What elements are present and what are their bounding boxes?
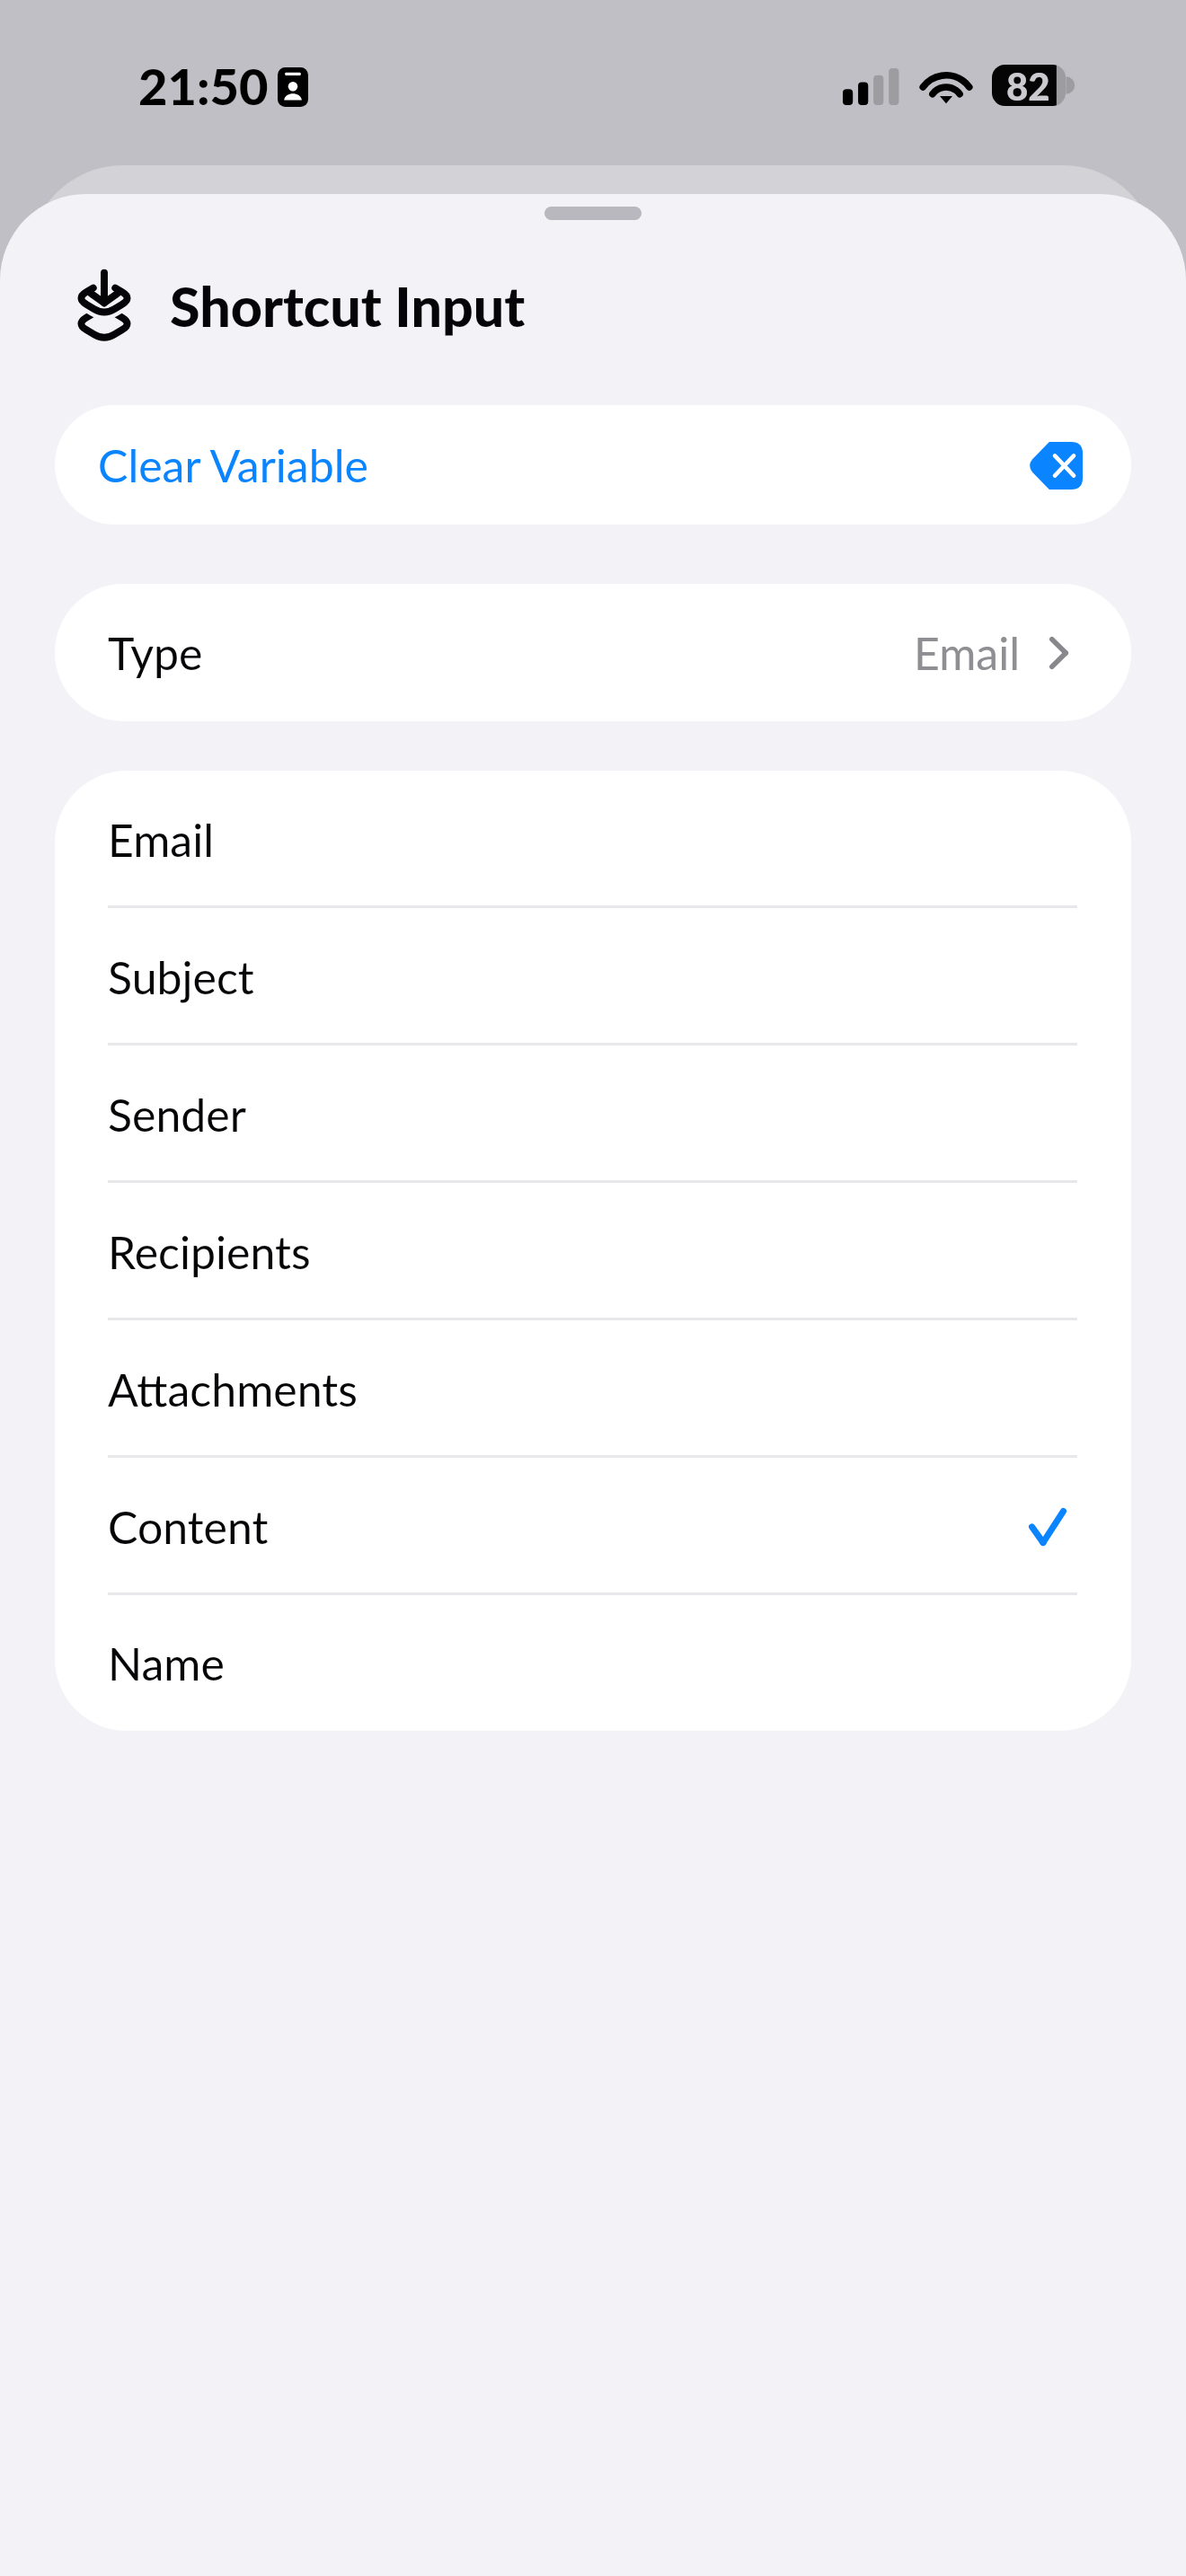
button[interactable]: Name xyxy=(55,1595,1131,1731)
staticText: Sender xyxy=(108,1088,246,1142)
staticText: Email xyxy=(108,813,214,867)
button[interactable]: Attachments xyxy=(55,1320,1131,1458)
button[interactable]: Clear Variable xyxy=(55,405,1131,525)
staticText: Name xyxy=(108,1636,225,1690)
staticText: Recipients xyxy=(108,1225,311,1279)
staticText: Subject xyxy=(108,950,254,1004)
staticText: Email xyxy=(914,626,1020,680)
staticText: Attachments xyxy=(108,1363,358,1416)
staticText: Shortcut Input xyxy=(170,273,526,339)
staticText: Type xyxy=(108,626,203,680)
button[interactable]: Content xyxy=(55,1458,1131,1595)
staticText: Clear Variable xyxy=(98,438,368,492)
button[interactable]: Sender xyxy=(55,1045,1131,1183)
button[interactable]: Email xyxy=(55,771,1131,908)
button[interactable]: Subject xyxy=(55,908,1131,1045)
button[interactable]: Type xyxy=(55,584,1131,721)
staticText: Content xyxy=(108,1500,269,1554)
staticText: 82 xyxy=(1006,64,1050,109)
button[interactable]: Clear xyxy=(1021,434,1089,497)
button[interactable]: Recipients xyxy=(55,1183,1131,1320)
staticText: 21:50 xyxy=(138,56,269,116)
